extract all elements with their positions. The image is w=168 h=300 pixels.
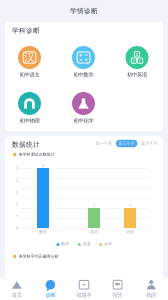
button[interactable]: 近六个月	[138, 140, 160, 147]
staticText: 1	[129, 203, 131, 208]
staticText: 错题本	[76, 292, 91, 298]
staticText: 1	[93, 203, 95, 208]
button[interactable]: 错题本	[67, 278, 101, 300]
staticText: 各学科平均正确率分析	[19, 254, 59, 259]
staticText: 报告	[113, 292, 123, 298]
staticText: 初中物理	[19, 117, 39, 124]
button[interactable]: 初中化学	[59, 92, 107, 124]
staticText: 初中语文	[19, 71, 39, 78]
staticText: 近六个月	[141, 141, 157, 146]
button[interactable]: 初中物理	[5, 92, 53, 124]
button[interactable]: A	[113, 46, 161, 78]
staticText: 初中英语	[127, 71, 147, 78]
staticText: 首页	[12, 292, 22, 298]
staticText: 3	[16, 165, 18, 171]
staticText: 2	[16, 177, 18, 183]
staticText: 0	[16, 225, 18, 231]
staticText: 学科诊断	[12, 26, 40, 35]
button[interactable]: 初中数学	[59, 46, 107, 78]
staticText: 学情诊断	[70, 7, 98, 15]
staticText: 近一个月	[96, 141, 112, 146]
staticText: 各学科测试次数统计	[19, 152, 55, 157]
button[interactable]: 近一个月	[93, 140, 115, 147]
staticText: 数学	[39, 229, 47, 234]
staticText: 2	[16, 189, 18, 195]
staticText: 1	[16, 213, 18, 219]
staticText: B	[132, 58, 135, 63]
button[interactable]: 首页	[0, 278, 34, 300]
staticText: 化学	[104, 241, 112, 246]
button[interactable]: 汉	[5, 46, 53, 78]
button[interactable]: 诊断	[34, 278, 67, 300]
button[interactable]: 近三个月	[116, 140, 137, 147]
staticText: 化学	[126, 229, 134, 234]
staticText: 我的	[146, 292, 156, 298]
staticText: C	[139, 58, 142, 63]
button[interactable]: 我的	[134, 278, 168, 300]
staticText: 数据统计	[12, 140, 40, 149]
staticText: 汉	[24, 51, 35, 64]
staticText: 诊断	[45, 292, 55, 298]
staticText: 英语	[83, 241, 91, 246]
staticText: 初中化学	[73, 117, 93, 124]
staticText: 近三个月	[119, 141, 135, 146]
staticText: 1	[16, 201, 18, 207]
staticText: A	[135, 52, 138, 57]
staticText: 英语	[90, 229, 98, 234]
staticText: 3	[42, 163, 44, 168]
staticText: 数学	[61, 241, 69, 246]
button[interactable]: 报告	[101, 278, 134, 300]
staticText: 初中数学	[73, 71, 93, 78]
